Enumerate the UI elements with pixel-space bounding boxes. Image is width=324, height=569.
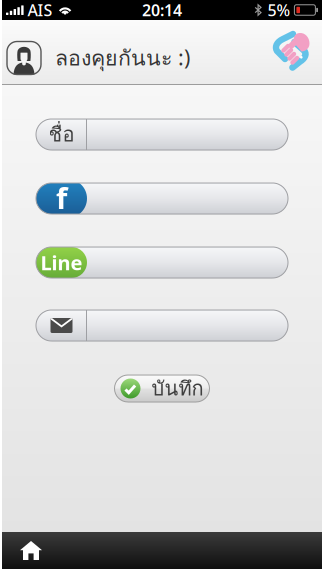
staticText: 20:14: [142, 0, 182, 21]
button[interactable]: [36, 310, 288, 341]
staticText: Line: [40, 249, 82, 276]
button[interactable]: ลองคุยกันนะ :): [47, 30, 190, 75]
button[interactable]: Profile: [2, 30, 47, 74]
staticText: ลองคุยกันนะ :): [55, 41, 190, 75]
button[interactable]: ชื่อ: [36, 119, 288, 150]
staticText: 5%: [267, 0, 290, 21]
button[interactable]: App logo: [270, 29, 322, 76]
staticText: AIS: [28, 0, 53, 21]
button[interactable]: บันทึก: [114, 375, 209, 402]
staticText: บันทึก: [151, 373, 203, 404]
staticText: f: [56, 178, 67, 217]
button[interactable]: Line: [36, 247, 288, 278]
button[interactable]: f: [36, 183, 288, 214]
staticText: ชื่อ: [48, 119, 74, 150]
button[interactable]: Home: [2, 532, 60, 569]
